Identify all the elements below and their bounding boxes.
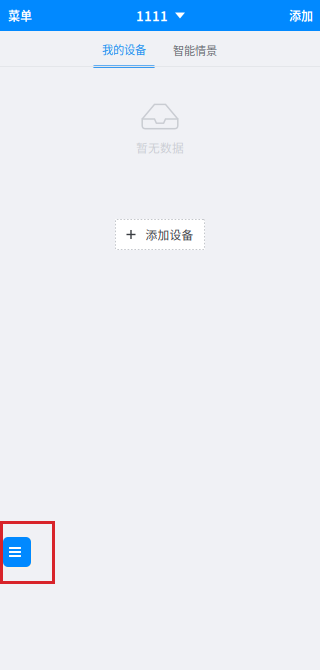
staticText: 暂无数据 (136, 139, 184, 156)
staticText: 1111 (136, 6, 168, 25)
staticText: 智能情景 (173, 42, 217, 58)
staticText: 菜单 (8, 7, 32, 24)
staticText: 我的设备 (102, 41, 146, 57)
button[interactable]: 智能情景 (164, 31, 226, 67)
staticText: 添加 (289, 7, 313, 24)
staticText: 添加设备 (145, 226, 193, 243)
button[interactable]: 添加 (289, 1, 320, 30)
button[interactable]: 添加设备 (115, 219, 205, 250)
button[interactable]: 我的设备 (93, 31, 155, 67)
button[interactable]: Menu (3, 537, 33, 569)
button[interactable]: 1111 (136, 0, 185, 31)
button[interactable]: 菜单 (0, 1, 32, 30)
